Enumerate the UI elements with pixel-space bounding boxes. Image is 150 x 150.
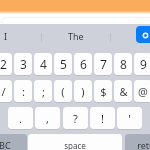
button[interactable]: ( (54, 80, 72, 102)
staticText: ' (128, 111, 131, 126)
button[interactable]: ' (117, 107, 142, 129)
button[interactable]: @ (134, 80, 150, 102)
staticText: ) (81, 84, 85, 99)
button[interactable]: ABC (0, 134, 27, 150)
button[interactable]: & (114, 80, 132, 102)
staticText: The (68, 30, 84, 42)
staticText: 9 (140, 56, 147, 72)
button[interactable]: Keyboard settings (136, 26, 150, 43)
button[interactable]: space (28, 134, 122, 150)
staticText: ABC (0, 139, 11, 150)
button[interactable]: / (0, 80, 12, 102)
button[interactable]: return (125, 134, 150, 150)
staticText: ( (61, 84, 65, 99)
button[interactable]: The (41, 24, 110, 48)
staticText: & (119, 84, 128, 99)
staticText: I (4, 30, 8, 42)
staticText: space (64, 140, 86, 150)
button[interactable]: ! (90, 107, 115, 129)
staticText: , (46, 111, 49, 126)
staticText: . (19, 111, 22, 126)
button[interactable]: 8 (114, 53, 132, 75)
staticText: / (1, 84, 6, 99)
button[interactable]: ; (34, 80, 52, 102)
button[interactable]: ) (74, 80, 92, 102)
button[interactable]: 3 (14, 53, 32, 75)
staticText: ! (101, 111, 104, 126)
staticText: $ (100, 84, 107, 99)
button[interactable]: 2 (0, 53, 12, 75)
button[interactable]: $ (94, 80, 112, 102)
button[interactable]: . (8, 107, 33, 129)
button[interactable]: 4 (34, 53, 52, 75)
staticText: ? (73, 111, 78, 126)
staticText: 8 (120, 56, 127, 72)
button[interactable]: , (35, 107, 60, 129)
button[interactable]: : (14, 80, 32, 102)
staticText: ; (42, 84, 45, 99)
button[interactable]: 5 (54, 53, 72, 75)
staticText: 2 (0, 56, 7, 72)
staticText: : (22, 84, 25, 99)
staticText: 7 (100, 56, 107, 72)
staticText: return (137, 139, 150, 150)
staticText: 6 (80, 56, 87, 72)
button[interactable]: 6 (74, 53, 92, 75)
staticText: 3 (20, 56, 27, 72)
staticText: 5 (60, 56, 67, 72)
button[interactable]: 9 (134, 53, 150, 75)
staticText: 4 (40, 56, 47, 72)
button[interactable]: ? (63, 107, 88, 129)
staticText: @ (138, 84, 148, 99)
button[interactable]: I (0, 24, 41, 48)
button[interactable]: 7 (94, 53, 112, 75)
